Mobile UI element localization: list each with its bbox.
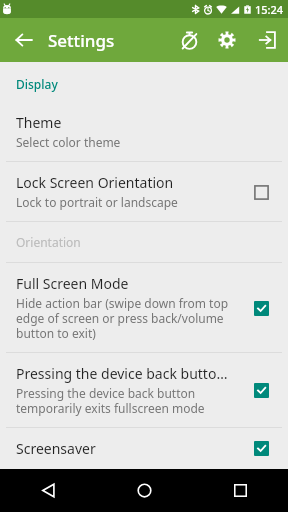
button[interactable]: Home — [96, 469, 192, 512]
button[interactable]: Theme — [0, 102, 288, 161]
button[interactable]: Lock Screen Orientation — [0, 162, 288, 221]
staticText: Select color theme — [16, 134, 121, 150]
button[interactable]: Back — [0, 469, 96, 512]
button[interactable]: Full Screen Mode — [0, 263, 288, 352]
staticText: Settings — [48, 29, 115, 52]
button[interactable]: Disable timer — [170, 18, 208, 62]
staticText: Orientation — [16, 234, 81, 250]
button[interactable]: Enabled — [246, 375, 276, 405]
staticText: Lock to portrait or landscape — [16, 194, 178, 210]
staticText: Full Screen Mode — [16, 274, 129, 293]
staticText: Lock Screen Orientation — [16, 173, 174, 192]
button[interactable]: Screensaver — [0, 428, 288, 469]
staticText: Screensaver — [16, 439, 96, 458]
button[interactable]: Enabled — [246, 439, 276, 458]
staticText: 15:24 — [255, 2, 284, 17]
button[interactable]: Enabled — [246, 293, 276, 323]
button[interactable]: Pressing the device back button te.. — [0, 353, 288, 427]
staticText: Theme — [16, 113, 62, 132]
staticText: Hide action bar (swipe down from top edg… — [16, 295, 236, 341]
button[interactable]: Disabled — [246, 177, 276, 207]
button[interactable]: Back — [0, 18, 48, 62]
staticText: Pressing the device back button te.. — [16, 364, 236, 383]
button[interactable]: Exit — [246, 18, 288, 62]
button[interactable]: Settings — [208, 18, 246, 62]
button[interactable]: Recent apps — [192, 469, 288, 512]
staticText: Display — [16, 76, 58, 92]
staticText: Pressing the device back button temporar… — [16, 385, 236, 416]
